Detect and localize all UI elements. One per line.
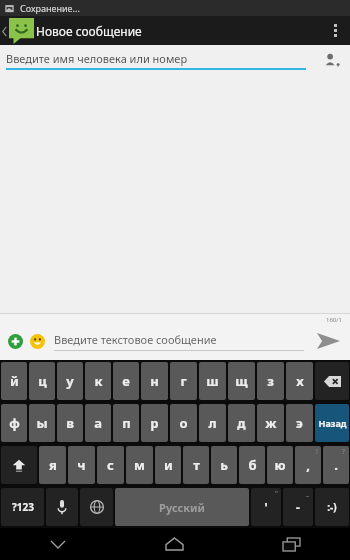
- button[interactable]: Shift: [1, 446, 37, 484]
- button[interactable]: Emoji: [26, 330, 48, 352]
- staticText: ?123: [12, 500, 34, 514]
- staticText: ы: [36, 414, 48, 432]
- staticText: ю: [274, 456, 286, 474]
- staticText: э: [296, 414, 303, 432]
- button[interactable]: ,: [295, 446, 321, 484]
- button[interactable]: :-): [315, 488, 349, 526]
- staticText: д: [237, 414, 246, 432]
- staticText: ,: [306, 456, 310, 474]
- other: Backspace: [324, 376, 341, 387]
- staticText: ц: [38, 372, 47, 390]
- button[interactable]: с: [97, 446, 124, 484]
- button[interactable]: ы: [29, 404, 55, 442]
- button[interactable]: ц: [29, 362, 55, 400]
- button[interactable]: й: [1, 362, 27, 400]
- button[interactable]: .: [323, 446, 349, 484]
- button[interactable]: у: [57, 362, 83, 400]
- button[interactable]: ш: [199, 362, 226, 400]
- button[interactable]: е: [113, 362, 139, 400]
- button[interactable]: Attach: [4, 330, 26, 352]
- button[interactable]: в: [57, 404, 83, 442]
- button[interactable]: з: [257, 362, 284, 400]
- staticText: п: [122, 414, 131, 432]
- staticText: _: [306, 489, 310, 499]
- button[interactable]: Введите имя человека или номер: [6, 51, 306, 70]
- button[interactable]: ю: [267, 446, 293, 484]
- button[interactable]: ф: [1, 404, 27, 442]
- button[interactable]: п: [113, 404, 139, 442]
- staticText: м: [134, 456, 145, 474]
- staticText: р: [150, 414, 159, 432]
- button[interactable]: о: [170, 404, 197, 442]
- staticText: б: [248, 456, 257, 474]
- staticText: т: [193, 456, 200, 474]
- staticText: к: [94, 372, 103, 390]
- button[interactable]: х: [286, 362, 313, 400]
- staticText: Введите текстовое сообщение: [54, 332, 217, 347]
- button[interactable]: Hide keyboard: [0, 528, 116, 560]
- staticText: -: [296, 499, 300, 515]
- button[interactable]: т: [183, 446, 209, 484]
- button[interactable]: Input method: [80, 488, 113, 526]
- button[interactable]: Send: [308, 322, 348, 360]
- button[interactable]: Recent apps: [233, 528, 350, 560]
- button[interactable]: р: [141, 404, 168, 442]
- button[interactable]: л: [199, 404, 226, 442]
- staticText: ': [264, 499, 268, 515]
- button[interactable]: г: [170, 362, 197, 400]
- button[interactable]: д: [228, 404, 255, 442]
- button[interactable]: Add contact: [312, 45, 350, 75]
- staticText: у: [66, 372, 74, 390]
- staticText: ш: [206, 372, 219, 390]
- button[interactable]: ?123: [1, 488, 44, 526]
- staticText: Сохранение...: [20, 2, 80, 14]
- staticText: я: [49, 456, 57, 474]
- button[interactable]: Русский: [115, 488, 249, 526]
- button[interactable]: ь: [211, 446, 237, 484]
- button[interactable]: н: [141, 362, 168, 400]
- button[interactable]: Voice input: [46, 488, 78, 526]
- staticText: ь: [220, 456, 228, 474]
- staticText: г: [180, 372, 187, 390]
- staticText: й: [10, 372, 19, 390]
- button[interactable]: ж: [257, 404, 284, 442]
- button[interactable]: ': [251, 488, 281, 526]
- staticText: 160/1: [326, 316, 342, 324]
- staticText: в: [66, 414, 74, 432]
- staticText: з: [267, 372, 274, 390]
- button[interactable]: я: [39, 446, 66, 484]
- staticText: о: [179, 414, 188, 432]
- staticText: ": [275, 489, 278, 499]
- staticText: .: [334, 456, 338, 474]
- other: Input method: [90, 500, 104, 514]
- staticText: !: [316, 447, 318, 457]
- staticText: и: [164, 456, 173, 474]
- button[interactable]: э: [286, 404, 313, 442]
- button[interactable]: Home: [116, 528, 233, 560]
- button[interactable]: Введите текстовое сообщение: [54, 332, 304, 351]
- button[interactable]: Back: [0, 16, 36, 45]
- button[interactable]: ч: [68, 446, 95, 484]
- button[interactable]: м: [126, 446, 153, 484]
- button[interactable]: More options: [320, 16, 350, 45]
- staticText: х: [296, 372, 304, 390]
- button[interactable]: и: [155, 446, 181, 484]
- staticText: л: [208, 414, 217, 432]
- button[interactable]: к: [85, 362, 111, 400]
- staticText: ф: [9, 414, 20, 432]
- button[interactable]: Назад: [315, 404, 349, 442]
- staticText: е: [122, 372, 130, 390]
- staticText: ж: [265, 414, 277, 432]
- button[interactable]: б: [239, 446, 265, 484]
- button[interactable]: а: [85, 404, 111, 442]
- button[interactable]: Backspace: [315, 362, 349, 400]
- other: Shift: [12, 459, 26, 472]
- button[interactable]: щ: [228, 362, 255, 400]
- button[interactable]: -: [283, 488, 313, 526]
- staticText: Введите имя человека или номер: [6, 51, 188, 66]
- staticText: Новое сообщение: [36, 23, 320, 39]
- staticText: н: [150, 372, 159, 390]
- staticText: Русский: [159, 500, 205, 515]
- staticText: Назад: [318, 417, 347, 429]
- staticText: :-): [327, 500, 337, 514]
